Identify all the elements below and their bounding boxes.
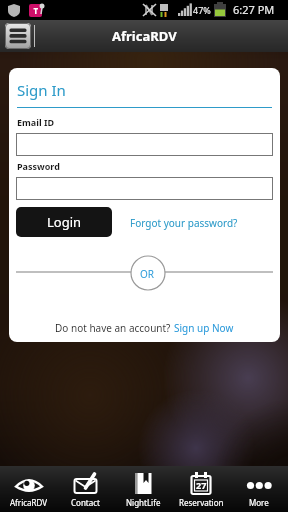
staticText: Reservation — [179, 497, 224, 508]
button[interactable]: Forgot your password? — [130, 216, 238, 230]
button[interactable]: AfricaRDV — [0, 466, 57, 512]
button[interactable] — [5, 23, 31, 49]
staticText: Contact — [71, 497, 100, 508]
staticText: 47% — [193, 4, 211, 16]
button[interactable]: Sign up Now — [174, 321, 234, 335]
staticText: Password — [17, 160, 60, 172]
staticText: NightLife — [126, 497, 161, 508]
button[interactable]: NightLife — [114, 466, 172, 512]
button[interactable]: 27 — [172, 466, 230, 512]
button[interactable]: More — [230, 466, 288, 512]
staticText: Login — [47, 213, 82, 231]
staticText: AfricaRDV — [10, 497, 48, 508]
button[interactable] — [16, 133, 273, 156]
staticText: AfricaRDV — [112, 27, 177, 45]
staticText: Sign In — [17, 80, 66, 100]
staticText: OR — [140, 267, 155, 281]
staticText: Email ID — [17, 116, 55, 128]
button[interactable]: Contact — [57, 466, 114, 512]
staticText: Do not have an account? — [55, 321, 174, 335]
staticText: 6:27 PM — [233, 2, 275, 17]
staticText: 27 — [196, 479, 207, 491]
button[interactable]: Login — [16, 207, 112, 237]
staticText: More — [249, 497, 269, 508]
button[interactable] — [16, 177, 273, 200]
